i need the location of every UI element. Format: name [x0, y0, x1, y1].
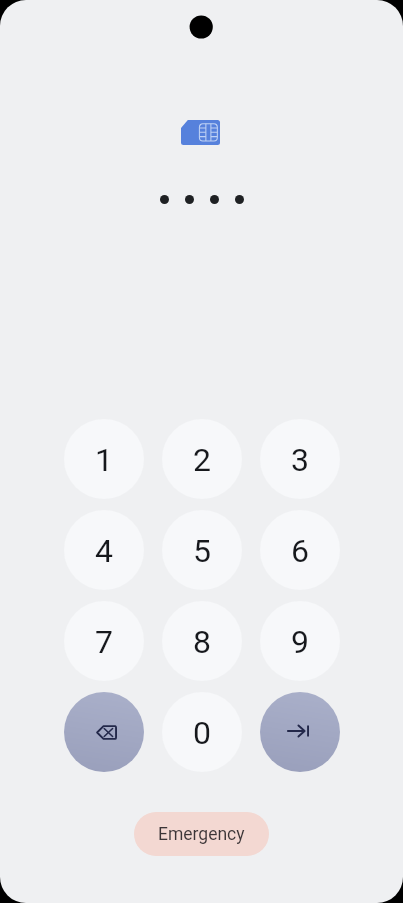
button[interactable]: 9: [260, 601, 340, 681]
staticText: 1: [95, 441, 113, 479]
button[interactable]: 5: [162, 510, 242, 590]
staticText: 3: [291, 441, 309, 479]
button[interactable]: Emergency: [134, 812, 269, 856]
staticText: 7: [95, 623, 113, 661]
staticText: 6: [291, 532, 309, 570]
button[interactable]: 2: [162, 419, 242, 499]
button[interactable]: 7: [64, 601, 144, 681]
button[interactable]: Enter: [260, 692, 340, 772]
button[interactable]: 1: [64, 419, 144, 499]
button[interactable]: 4: [64, 510, 144, 590]
staticText: 2: [193, 441, 211, 479]
button[interactable]: Backspace: [64, 692, 144, 772]
staticText: 4: [95, 532, 113, 570]
staticText: 8: [193, 623, 211, 661]
staticText: 9: [291, 623, 309, 661]
staticText: 0: [193, 714, 211, 752]
button[interactable]: 3: [260, 419, 340, 499]
button[interactable]: 8: [162, 601, 242, 681]
button[interactable]: 0: [162, 692, 242, 772]
staticText: 5: [193, 532, 211, 570]
button[interactable]: 6: [260, 510, 340, 590]
staticText: Emergency: [158, 824, 245, 845]
